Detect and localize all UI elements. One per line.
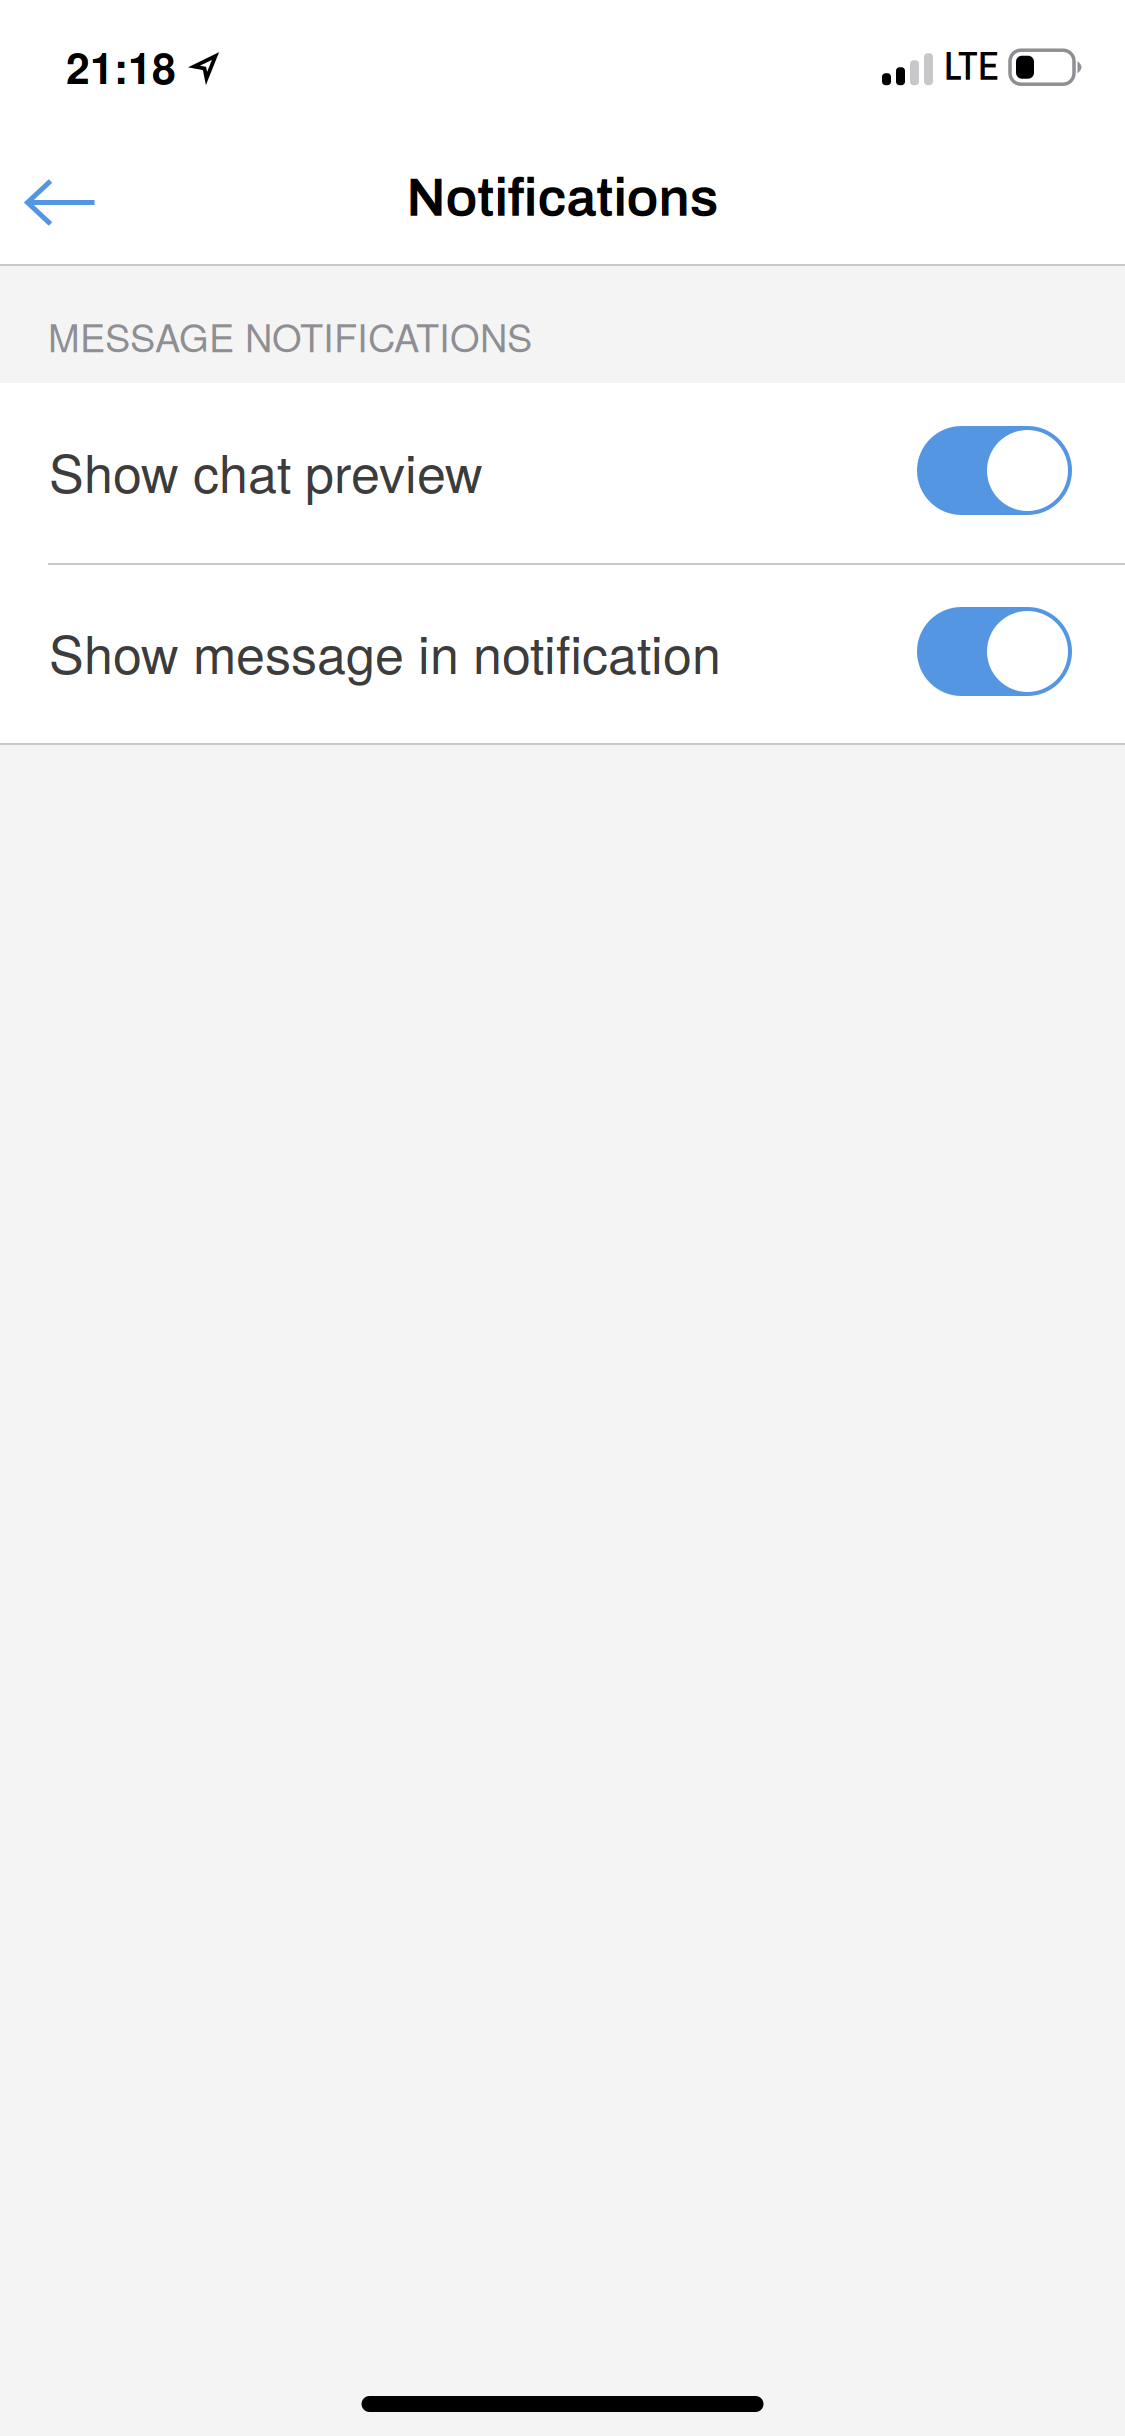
staticText: 21:18 [66,36,176,97]
button[interactable]: Back [0,132,122,264]
staticText: LTE [944,45,999,88]
button[interactable]: Show message in notification [0,565,1125,743]
staticText: Notifications [406,169,718,227]
staticText: Show message in notification [49,614,721,689]
staticText: MESSAGE NOTIFICATIONS [48,309,532,363]
button[interactable]: Show chat preview [0,383,1125,563]
staticText: Show chat preview [49,433,483,508]
